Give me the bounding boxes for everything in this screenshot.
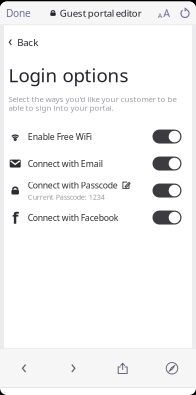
staticText: Enable Free WiFi	[28, 131, 92, 142]
staticText: Done	[6, 6, 31, 20]
staticText: Current Passcode: 1234	[28, 192, 105, 202]
button[interactable]: Done	[0, 1, 37, 24]
button[interactable]: f	[4, 204, 192, 231]
button[interactable]: Forward	[57, 355, 89, 381]
staticText: Connect with Facebook	[28, 212, 119, 223]
staticText: Guest portal editor	[60, 6, 142, 20]
staticText: f	[12, 207, 18, 228]
button[interactable]: Share	[107, 355, 139, 381]
staticText: able to sign into your portal.	[8, 102, 113, 113]
staticText: Connect with Email	[28, 158, 103, 169]
button[interactable]: Connect with Email	[4, 150, 192, 177]
button[interactable]: Text size	[154, 1, 174, 24]
staticText: A	[158, 10, 163, 20]
staticText: Login options	[8, 62, 128, 88]
button[interactable]: Connect with Passcode	[4, 177, 192, 204]
staticText: A	[163, 6, 170, 20]
button[interactable]: Back	[8, 355, 40, 381]
button[interactable]: Back	[4, 35, 43, 49]
staticText: Connect with Passcode	[28, 179, 118, 191]
button[interactable]: Reload	[174, 1, 196, 24]
staticText: Back	[17, 36, 38, 49]
staticText: Select the ways you'd like your customer…	[8, 94, 176, 104]
button[interactable]: Open in Safari	[156, 355, 188, 381]
button[interactable]: Enable Free WiFi	[4, 123, 192, 150]
